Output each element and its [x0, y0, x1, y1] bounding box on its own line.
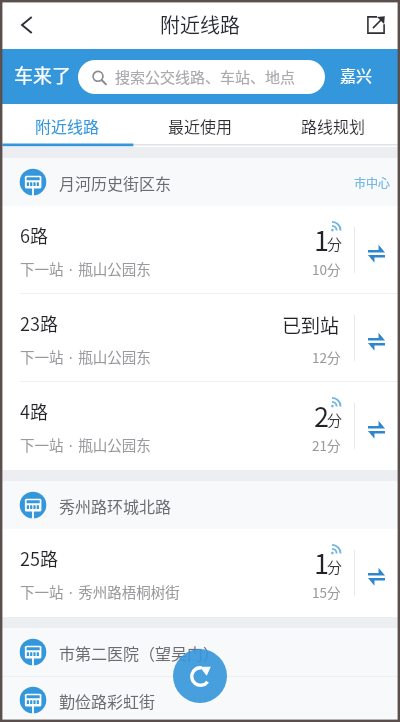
button[interactable]: Switch direction — [366, 330, 386, 350]
button[interactable]: 月河历史街区东 — [0, 158, 400, 206]
staticText: 21分 — [312, 435, 341, 455]
staticText: 23路 — [20, 310, 58, 336]
staticText: 秀州路环城北路 — [59, 494, 172, 517]
staticText: 4路 — [20, 398, 48, 424]
staticText: 1 — [314, 220, 329, 259]
staticText: 附近线路 — [35, 114, 100, 137]
staticText: 下一站 · 瓶山公园东 — [20, 346, 151, 367]
staticText: 下一站 · 瓶山公园东 — [20, 434, 151, 455]
staticText: 搜索公交线路、车站、地点 — [115, 66, 296, 88]
staticText: 下一站 · 秀州路梧桐树街 — [20, 581, 180, 602]
staticText: 已到站 — [282, 311, 340, 339]
staticText: 10分 — [312, 259, 341, 279]
button[interactable]: 6路 — [0, 206, 400, 294]
button[interactable]: 4路 — [0, 382, 400, 470]
button[interactable]: 市第二医院（望吴门） — [0, 628, 400, 676]
staticText: 分 — [327, 233, 343, 255]
staticText: 1 — [314, 543, 329, 582]
staticText: 6路 — [20, 222, 48, 248]
staticText: 12分 — [312, 347, 341, 367]
staticText: 勤俭路彩虹街 — [59, 689, 156, 712]
staticText: 市中心 — [354, 174, 391, 191]
button[interactable]: 搜索公交线路、车站、地点 — [78, 60, 325, 94]
staticText: 最近使用 — [168, 114, 233, 137]
button[interactable]: 最近使用 — [134, 104, 267, 146]
staticText: 嘉兴 — [340, 63, 373, 86]
button[interactable]: Refresh — [173, 649, 227, 703]
staticText: 市第二医院（望吴门） — [59, 641, 220, 664]
button[interactable]: Share — [358, 7, 394, 43]
staticText: 分 — [327, 409, 343, 431]
staticText: 路线规划 — [301, 114, 366, 137]
button[interactable]: 25路 — [0, 529, 400, 617]
button[interactable]: Switch direction — [366, 242, 386, 262]
button[interactable]: 勤俭路彩虹街 — [0, 677, 400, 722]
staticText: 2 — [314, 396, 329, 435]
button[interactable]: 嘉兴 — [340, 63, 373, 86]
button[interactable]: Switch direction — [366, 418, 386, 438]
button[interactable]: 附近线路 — [0, 104, 134, 146]
button[interactable]: Switch direction — [366, 565, 386, 585]
staticText: 25路 — [20, 545, 58, 571]
staticText: 分 — [327, 556, 343, 578]
button[interactable]: 秀州路环城北路 — [0, 481, 400, 529]
staticText: 月河历史街区东 — [59, 171, 172, 194]
button[interactable]: 路线规划 — [267, 104, 400, 146]
button[interactable]: Back — [9, 7, 45, 43]
staticText: 车来了 — [14, 61, 72, 89]
staticText: 15分 — [312, 582, 341, 602]
button[interactable]: 23路 — [0, 294, 400, 382]
staticText: 附近线路 — [160, 10, 240, 39]
staticText: 下一站 · 瓶山公园东 — [20, 258, 151, 279]
